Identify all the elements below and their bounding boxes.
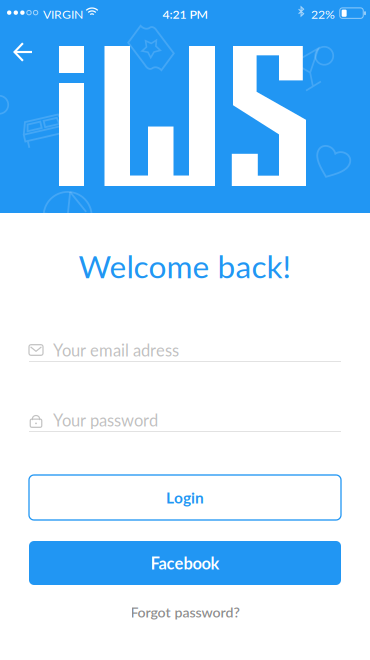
staticText: Login bbox=[166, 488, 204, 507]
button[interactable]: Facebook bbox=[29, 541, 341, 585]
staticText: 4:21 PM bbox=[162, 7, 207, 21]
staticText: 22% bbox=[311, 7, 335, 21]
staticText: Facebook bbox=[150, 553, 219, 573]
staticText: Your email adress bbox=[53, 340, 179, 360]
staticText: Forgot password? bbox=[130, 603, 239, 620]
button[interactable]: Login bbox=[29, 475, 341, 520]
staticText: VIRGIN bbox=[43, 7, 83, 21]
button[interactable]: Forgot password? bbox=[0, 599, 370, 625]
button[interactable]: Back bbox=[1, 30, 45, 74]
staticText: Your password bbox=[53, 410, 158, 430]
staticText: Welcome back! bbox=[78, 247, 291, 285]
